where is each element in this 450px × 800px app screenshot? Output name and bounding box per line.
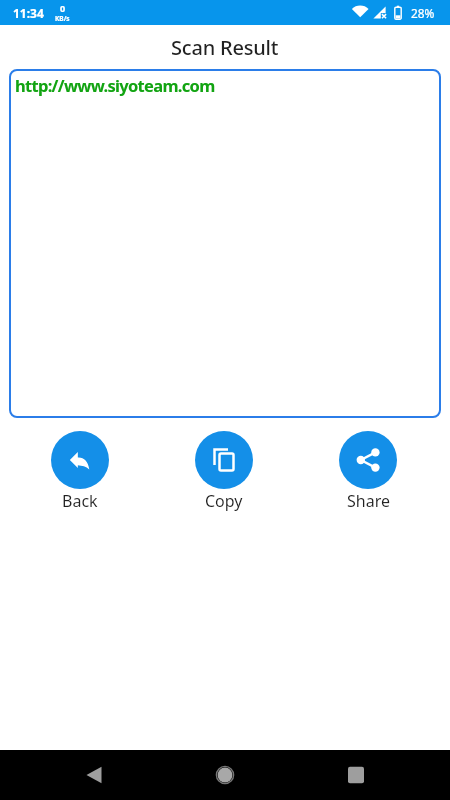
staticText: 28% bbox=[411, 5, 435, 21]
staticText: Share bbox=[347, 490, 390, 512]
staticText: 11:34 bbox=[13, 5, 44, 21]
staticText: KB/s bbox=[55, 14, 70, 23]
button[interactable] bbox=[321, 750, 391, 800]
button[interactable]: Back bbox=[30, 431, 130, 512]
staticText: Copy bbox=[205, 490, 243, 512]
staticText: 0 bbox=[60, 2, 66, 14]
staticText: http://www.siyoteam.com bbox=[15, 74, 215, 96]
button[interactable] bbox=[59, 750, 129, 800]
staticText: Scan Result bbox=[171, 34, 279, 61]
button[interactable]: Copy bbox=[174, 431, 274, 512]
button[interactable]: Share bbox=[318, 431, 418, 512]
staticText: Back bbox=[62, 490, 98, 512]
button[interactable] bbox=[190, 750, 260, 800]
